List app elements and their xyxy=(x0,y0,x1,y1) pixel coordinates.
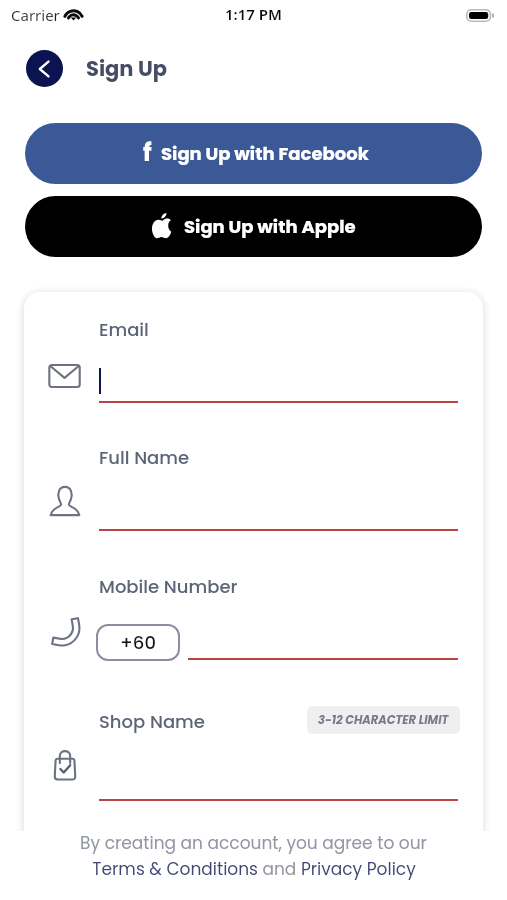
staticText: Email xyxy=(99,317,149,342)
staticText: 1:17 PM xyxy=(225,4,282,24)
staticText: Sign Up xyxy=(86,54,168,83)
staticText: Sign Up with Apple xyxy=(184,214,356,239)
button[interactable]: f xyxy=(25,123,482,184)
staticText: Mobile Number xyxy=(99,574,238,599)
button[interactable]: Back xyxy=(26,50,63,87)
staticText: Shop Name xyxy=(99,709,205,734)
staticText: Sign Up with Facebook xyxy=(161,141,369,166)
button[interactable]: Terms & Conditions and Privacy Policy xyxy=(92,857,416,881)
staticText: By creating an account, you agree to our xyxy=(80,831,427,855)
staticText: f xyxy=(143,136,152,170)
button[interactable]: Sign Up with Apple xyxy=(25,196,482,257)
staticText: +60 xyxy=(120,630,156,655)
staticText: Full Name xyxy=(99,445,190,470)
staticText: Carrier xyxy=(11,5,60,25)
staticText: 3-12 CHARACTER LIMIT xyxy=(318,712,449,728)
